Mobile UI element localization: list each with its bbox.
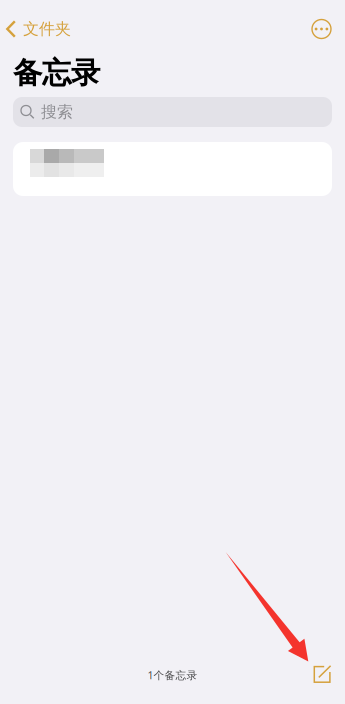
button[interactable]: 文件夹	[0, 16, 71, 42]
staticText: 文件夹	[23, 19, 71, 39]
button[interactable]: More	[311, 16, 345, 42]
staticText: 备忘录	[13, 55, 100, 91]
staticText: 搜索	[41, 102, 73, 122]
button[interactable]: New Note	[313, 661, 345, 688]
staticText: 1个备忘录	[147, 668, 197, 682]
button[interactable]	[13, 142, 332, 196]
